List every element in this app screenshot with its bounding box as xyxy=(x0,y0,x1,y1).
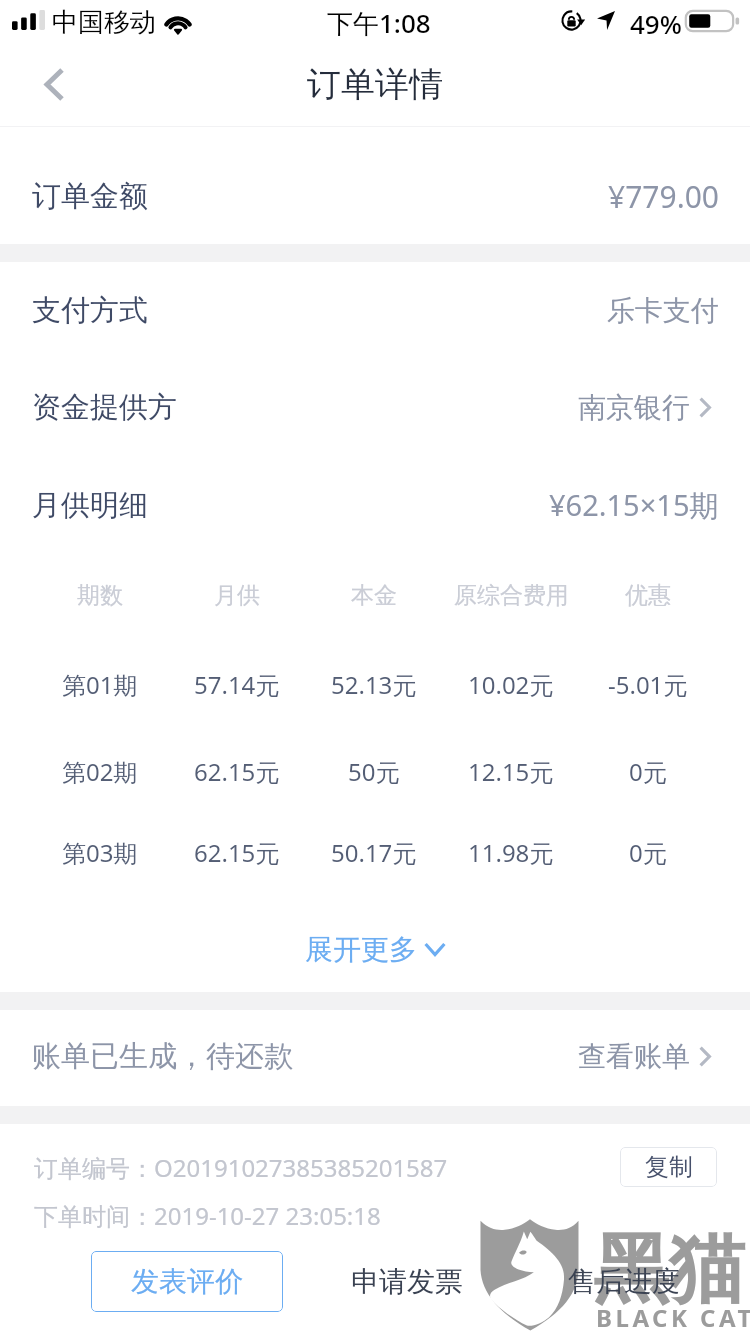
button[interactable]: 申请发票 xyxy=(346,1257,467,1305)
staticText: 下午1:08 xyxy=(327,5,431,41)
staticText: 乐卡支付 xyxy=(607,293,719,328)
staticText: 订单编号：O20191027385385201587 xyxy=(34,1151,448,1184)
button[interactable]: 售后进度 xyxy=(563,1257,684,1305)
staticText: 第03期 xyxy=(62,836,138,869)
staticText: 第02期 xyxy=(62,755,138,788)
staticText: 下单时间：2019-10-27 23:05:18 xyxy=(34,1199,381,1232)
staticText: 申请发票 xyxy=(351,1264,463,1299)
button[interactable]: Back xyxy=(26,56,82,112)
staticText: -5.01元 xyxy=(608,668,688,701)
staticText: 售后进度 xyxy=(568,1264,680,1299)
staticText: 49% xyxy=(630,6,682,41)
staticText: 订单金额 xyxy=(32,178,148,215)
staticText: 支付方式 xyxy=(32,292,148,329)
staticText: 资金提供方 xyxy=(32,389,177,426)
staticText: ¥62.15×15期 xyxy=(549,485,719,525)
button[interactable]: 展开更多 xyxy=(285,922,466,977)
staticText: 期数 xyxy=(77,581,123,610)
staticText: 订单详情 xyxy=(307,63,443,106)
staticText: 10.02元 xyxy=(468,668,554,701)
staticText: 月供明细 xyxy=(32,487,148,524)
button[interactable]: 资金提供方 xyxy=(0,359,750,455)
staticText: 62.15元 xyxy=(194,755,280,788)
staticText: 查看账单 xyxy=(578,1039,690,1074)
staticText: 50元 xyxy=(348,755,400,788)
staticText: 11.98元 xyxy=(468,836,554,869)
staticText: ¥779.00 xyxy=(608,176,719,217)
staticText: 黑猫 xyxy=(593,1222,745,1318)
staticText: 12.15元 xyxy=(468,755,554,788)
button[interactable]: 月供明细 xyxy=(0,457,750,553)
button[interactable]: 订单金额 xyxy=(0,148,750,244)
staticText: 优惠 xyxy=(625,581,671,610)
staticText: BLACK CAT xyxy=(596,1301,750,1334)
button[interactable]: 支付方式 xyxy=(0,262,750,358)
staticText: 发表评价 xyxy=(131,1264,243,1299)
staticText: 0元 xyxy=(629,836,667,869)
staticText: 原综合费用 xyxy=(454,581,569,610)
staticText: 0元 xyxy=(629,755,667,788)
staticText: 南京银行 xyxy=(578,390,690,425)
staticText: 月供 xyxy=(214,581,260,610)
staticText: 本金 xyxy=(351,581,397,610)
staticText: 展开更多 xyxy=(305,932,417,967)
staticText: 62.15元 xyxy=(194,836,280,869)
staticText: 第01期 xyxy=(62,668,138,701)
staticText: 中国移动 xyxy=(52,6,156,39)
staticText: 复制 xyxy=(645,1152,693,1182)
staticText: 50.17元 xyxy=(331,836,417,869)
staticText: 52.13元 xyxy=(331,668,417,701)
button[interactable]: 复制 xyxy=(620,1147,717,1187)
staticText: 账单已生成，待还款 xyxy=(32,1038,293,1075)
staticText: 57.14元 xyxy=(194,668,280,701)
button[interactable]: 发表评价 xyxy=(91,1251,283,1312)
button[interactable]: 账单已生成，待还款 xyxy=(0,1008,750,1104)
